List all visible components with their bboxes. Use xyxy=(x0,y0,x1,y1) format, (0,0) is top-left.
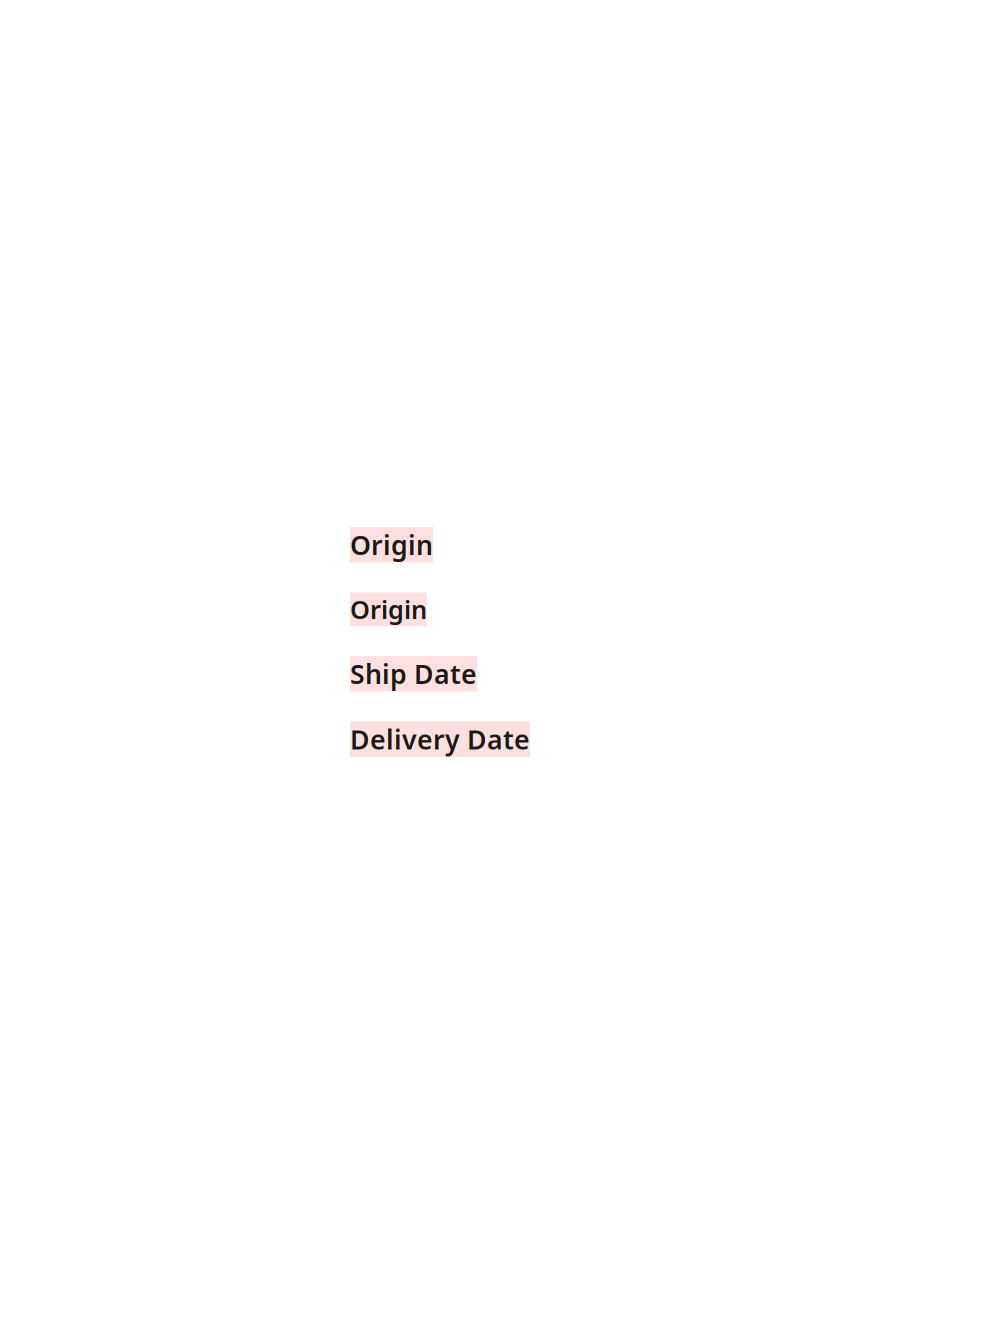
staticText: Ship Date xyxy=(350,656,477,691)
staticText: Origin xyxy=(350,527,433,562)
staticText: Delivery Date xyxy=(350,721,530,757)
staticText: Origin xyxy=(350,592,427,626)
